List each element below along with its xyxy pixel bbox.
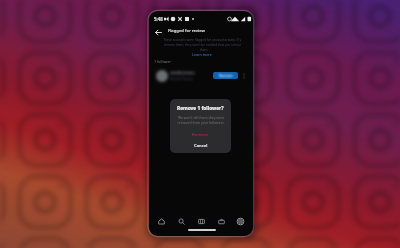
button[interactable]: Search (176, 216, 186, 226)
button[interactable]: Back (153, 27, 163, 37)
staticText: natalia_kovacs (170, 70, 195, 75)
button[interactable]: Cancel (194, 143, 208, 149)
staticText: These accounts were flagged for unusual … (163, 38, 241, 52)
button[interactable]: More options (240, 72, 247, 80)
staticText: Flagged for review (168, 28, 205, 34)
staticText: 5:48 (154, 16, 163, 22)
button[interactable]: Remove (213, 72, 238, 79)
button[interactable]: Home (156, 216, 166, 226)
staticText: 1 follower (154, 59, 172, 64)
staticText: Remove 1 follower? (177, 105, 224, 112)
button[interactable]: Learn more (192, 52, 212, 57)
staticText: We won't tell them they were removed fro… (177, 115, 225, 125)
button[interactable]: Profile photo (156, 70, 168, 82)
button[interactable]: Reels (196, 216, 206, 226)
staticText: Remove (219, 73, 233, 78)
button[interactable]: Remove (192, 132, 209, 138)
button[interactable]: Shop (216, 216, 226, 226)
button[interactable]: Profile (235, 216, 245, 226)
